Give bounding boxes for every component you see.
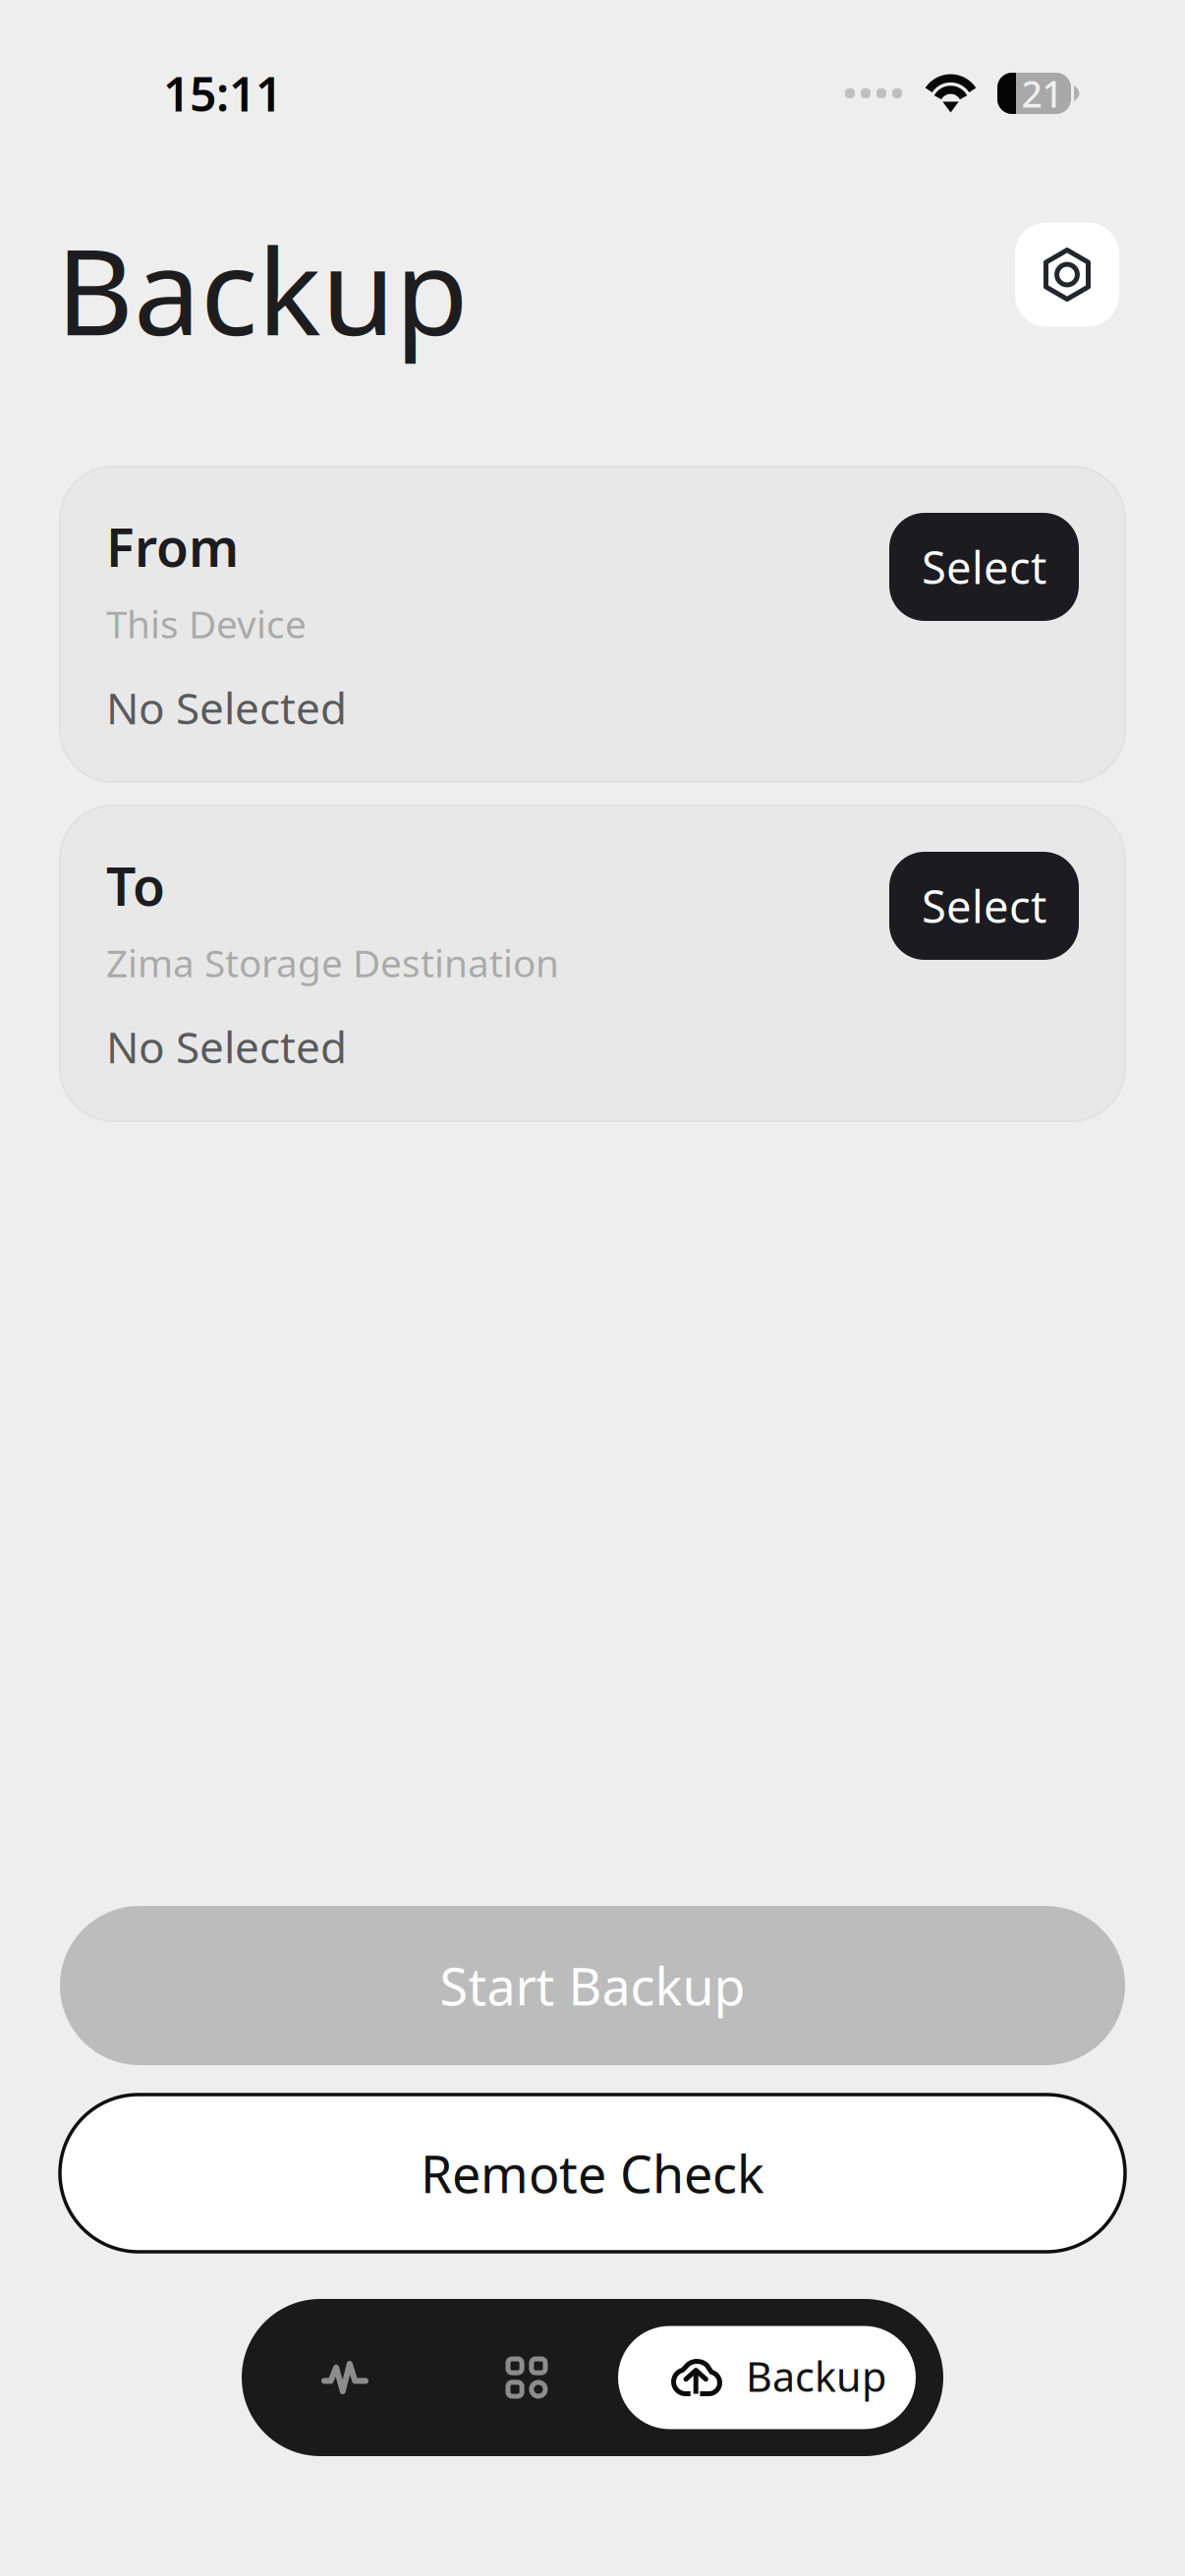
button[interactable]: Start Backup [60,1906,1125,2065]
staticText: Backup [56,210,469,368]
staticText: To [106,851,165,920]
staticText: 21 [1021,69,1063,118]
button[interactable]: Select [889,852,1079,960]
staticText: From [106,512,239,581]
button[interactable]: Apps [448,2299,605,2456]
staticText: Backup [746,2349,886,2403]
staticText: No Selected [106,679,347,736]
staticText: Remote Check [421,2139,764,2207]
staticText: 15:11 [163,62,282,125]
staticText: Zima Storage Destination [106,937,559,988]
staticText: Select [922,537,1046,596]
button[interactable]: Remote Check [60,2095,1125,2252]
button[interactable]: Select [889,513,1079,621]
button[interactable]: Settings [1015,223,1119,327]
button[interactable]: Backup [618,2326,916,2429]
staticText: This Device [106,598,307,649]
staticText: Start Backup [440,1952,745,2020]
staticText: Select [922,876,1046,935]
staticText: No Selected [106,1018,347,1075]
button[interactable]: Activity [242,2299,448,2456]
